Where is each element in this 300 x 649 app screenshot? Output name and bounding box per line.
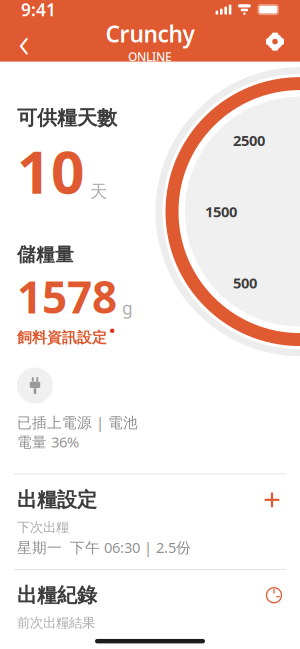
staticText: ONLINE <box>128 49 172 65</box>
staticText: 10 <box>17 132 85 210</box>
staticText: 天 <box>90 181 107 202</box>
staticText: 星期一 下午 06:30 | 2.5份 <box>17 537 191 557</box>
staticText: 飼料資訊設定 <box>17 329 107 347</box>
staticText: 2500 <box>233 131 265 150</box>
staticText: 出糧設定 <box>17 487 97 512</box>
staticText: 1500 <box>205 202 237 221</box>
staticText: 前次出糧結果 <box>17 614 95 631</box>
button[interactable]: Back <box>8 25 40 59</box>
staticText: 下次出糧 <box>17 519 69 535</box>
staticText: 可供糧天數 <box>17 106 117 130</box>
staticText: 500 <box>233 273 257 293</box>
staticText: 已插上電源 | 電池電量 36% <box>17 413 138 452</box>
button[interactable]: 出糧紀錄 <box>0 570 300 631</box>
button[interactable]: Settings <box>258 25 292 59</box>
staticText: Crunchy <box>105 19 194 49</box>
staticText: g <box>122 297 133 320</box>
button[interactable]: 飼料資訊設定 <box>17 326 114 350</box>
button[interactable]: 出糧設定 <box>0 474 300 569</box>
staticText: 9:41 <box>21 0 56 21</box>
staticText: 1578 <box>17 267 117 325</box>
staticText: ‹ <box>18 14 29 69</box>
staticText: 儲糧量 <box>17 243 74 266</box>
staticText: 出糧紀錄 <box>17 583 97 608</box>
